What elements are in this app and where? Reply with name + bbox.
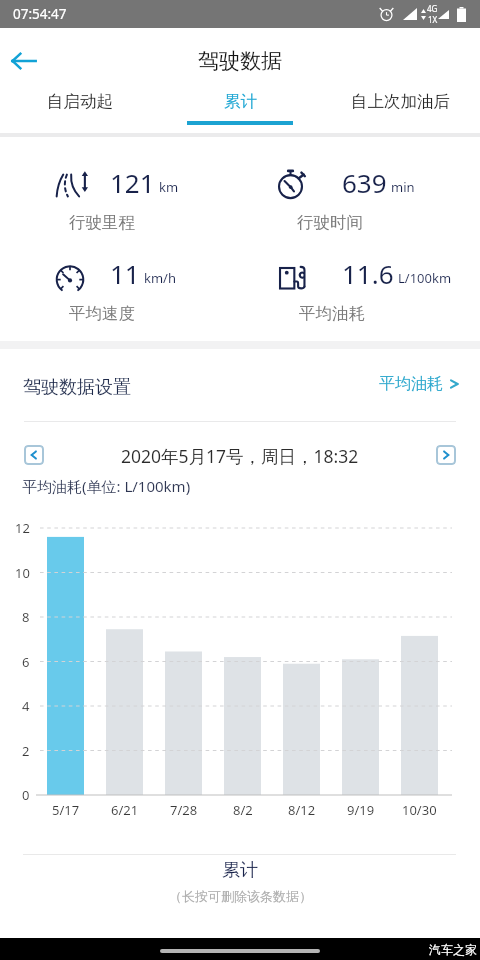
button[interactable]: 平均油耗: [379, 374, 460, 394]
staticText: （长按可删除该条数据）: [169, 888, 312, 904]
staticText: 5/17: [52, 801, 80, 819]
button[interactable]: Next: [436, 445, 456, 465]
staticText: 9/19: [347, 801, 375, 819]
staticText: 2020年5月17号，周日，18:32: [121, 444, 359, 468]
staticText: 07:54:47: [13, 5, 67, 23]
staticText: 11.6: [342, 256, 394, 291]
staticText: 10/30: [402, 801, 437, 819]
staticText: 自启动起: [47, 91, 113, 112]
button[interactable]: Back: [2, 39, 46, 83]
staticText: km/h: [144, 269, 176, 287]
staticText: 12: [15, 519, 30, 537]
staticText: L/100km: [398, 269, 452, 287]
staticText: 驾驶数据设置: [23, 376, 131, 399]
staticText: 6: [22, 653, 30, 671]
staticText: 11: [110, 256, 140, 291]
staticText: min: [391, 178, 415, 196]
button[interactable]: Previous: [24, 445, 44, 465]
staticText: 平均油耗: [299, 303, 365, 324]
staticText: 4G: [427, 3, 438, 14]
staticText: 平均油耗(单位: L/100km): [22, 476, 191, 496]
staticText: 平均速度: [69, 303, 135, 324]
staticText: 汽车之家: [429, 942, 477, 957]
staticText: 8/12: [288, 801, 316, 819]
staticText: 自上次加油后: [351, 91, 450, 112]
staticText: 6/21: [111, 801, 139, 819]
staticText: 2: [22, 742, 30, 760]
staticText: 8: [22, 608, 30, 626]
staticText: 10: [15, 564, 30, 582]
button[interactable]: 自上次加油后: [320, 84, 480, 124]
staticText: 639: [342, 165, 387, 200]
staticText: 8/2: [233, 801, 253, 819]
staticText: 4: [22, 697, 30, 715]
staticText: km: [159, 178, 179, 196]
staticText: 平均油耗: [379, 374, 443, 394]
staticText: 驾驶数据: [198, 48, 282, 74]
staticText: 0: [22, 786, 30, 804]
staticText: 121: [110, 165, 155, 200]
staticText: 1X: [428, 14, 438, 25]
staticText: 累计: [222, 859, 258, 882]
staticText: 行驶时间: [297, 212, 363, 233]
button[interactable]: 自启动起: [0, 84, 160, 124]
staticText: 7/28: [170, 801, 198, 819]
staticText: 累计: [224, 91, 257, 112]
button[interactable]: 累计: [160, 84, 320, 124]
staticText: 行驶里程: [69, 212, 135, 233]
